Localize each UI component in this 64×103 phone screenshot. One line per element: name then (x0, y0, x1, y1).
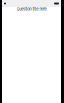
staticText: Question title here (16, 7, 46, 11)
